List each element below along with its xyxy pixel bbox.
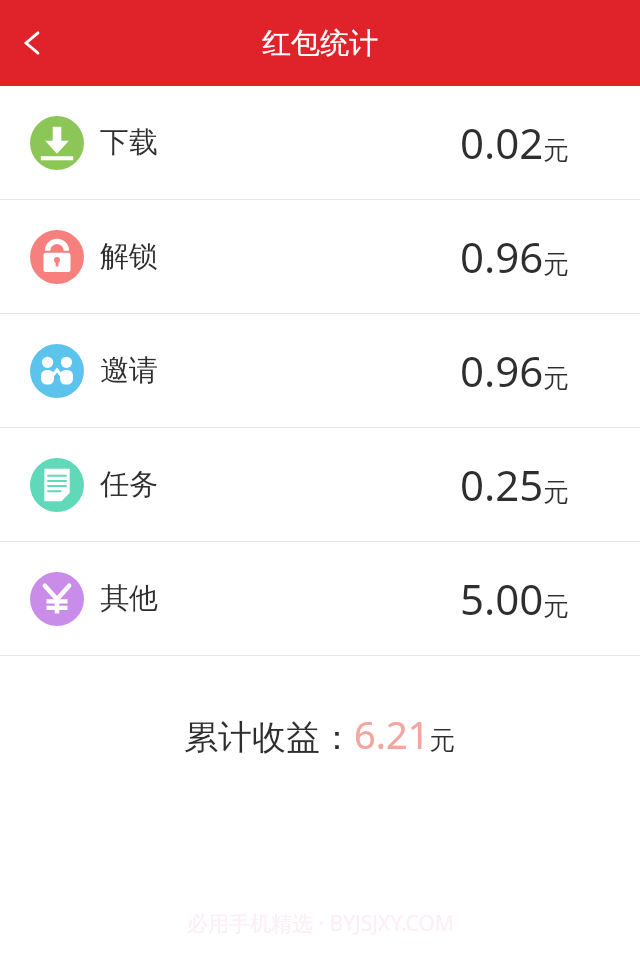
staticText: 累计收益：6.21元	[184, 708, 456, 760]
button[interactable]: 其他	[0, 542, 640, 655]
button[interactable]: 下载	[0, 86, 640, 199]
staticText: 0.96元	[460, 228, 570, 285]
staticText: 5.00元	[460, 570, 570, 627]
staticText: 0.25元	[460, 456, 570, 513]
staticText: 红包统计	[262, 25, 378, 62]
staticText: 任务	[100, 466, 158, 503]
button[interactable]: Back	[0, 11, 64, 75]
button[interactable]: 邀请	[0, 314, 640, 427]
staticText: 下载	[100, 124, 158, 161]
button[interactable]: 任务	[0, 428, 640, 541]
staticText: 邀请	[100, 352, 158, 389]
button[interactable]: 解锁	[0, 200, 640, 313]
staticText: 其他	[100, 580, 158, 617]
staticText: 解锁	[100, 238, 158, 275]
staticText: 0.96元	[460, 342, 570, 399]
staticText: 必用手机精选 · BYJSJXY.COM	[187, 909, 454, 938]
staticText: 0.02元	[460, 114, 570, 171]
